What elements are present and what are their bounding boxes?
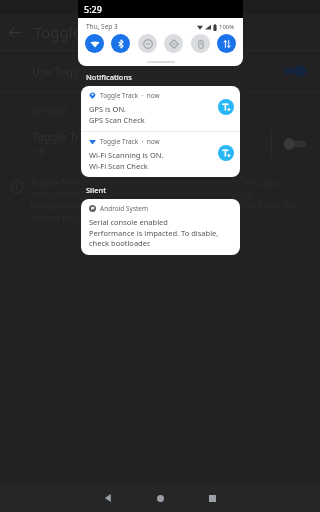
button[interactable]: Toggle Track · now [81, 132, 240, 177]
button[interactable]: Quick setting [85, 34, 104, 53]
button[interactable]: Quick setting [164, 34, 183, 53]
staticText: 5:29 [84, 3, 102, 15]
staticText: 100% [219, 23, 235, 31]
staticText: Wi-Fi Scanning is ON. [89, 150, 164, 160]
button[interactable]: Quick setting [217, 34, 236, 53]
staticText: Toggle Track · now [100, 137, 160, 146]
button[interactable]: Back [91, 484, 125, 512]
button[interactable]: Toggle Track shortcut [0, 129, 320, 158]
button[interactable]: Home [143, 484, 177, 512]
staticText: GPS Scan Check [89, 115, 145, 125]
staticText: Toggle Track request notification whenev… [30, 176, 302, 224]
button[interactable]: Use Toggle Track [0, 51, 320, 91]
staticText: Use Toggle Track [32, 64, 284, 79]
staticText: Performance is impacted. To disable, che… [89, 228, 232, 248]
button[interactable]: Quick setting [138, 34, 157, 53]
staticText: Silent [86, 185, 107, 195]
button[interactable]: Recent apps [195, 484, 229, 512]
staticText: Toggle Track [34, 22, 123, 42]
button[interactable]: Toggle Track · now [81, 86, 240, 131]
staticText: GPS is ON. [89, 104, 127, 114]
button[interactable]: Quick setting [111, 34, 130, 53]
staticText: Android System [100, 204, 149, 213]
staticText: Wi-Fi Scan Check [89, 161, 148, 171]
staticText: Notifications [86, 72, 132, 82]
staticText: Toggle Track shortcut [32, 129, 143, 144]
staticText: Thu, Sep 3 [86, 22, 118, 31]
staticText: Toggle Track · now [100, 91, 160, 100]
button[interactable]: Quick setting [191, 34, 210, 53]
staticText: Serial console enabled [89, 217, 168, 227]
button[interactable]: Android System [81, 199, 240, 255]
staticText: OPTIONS [32, 106, 68, 117]
